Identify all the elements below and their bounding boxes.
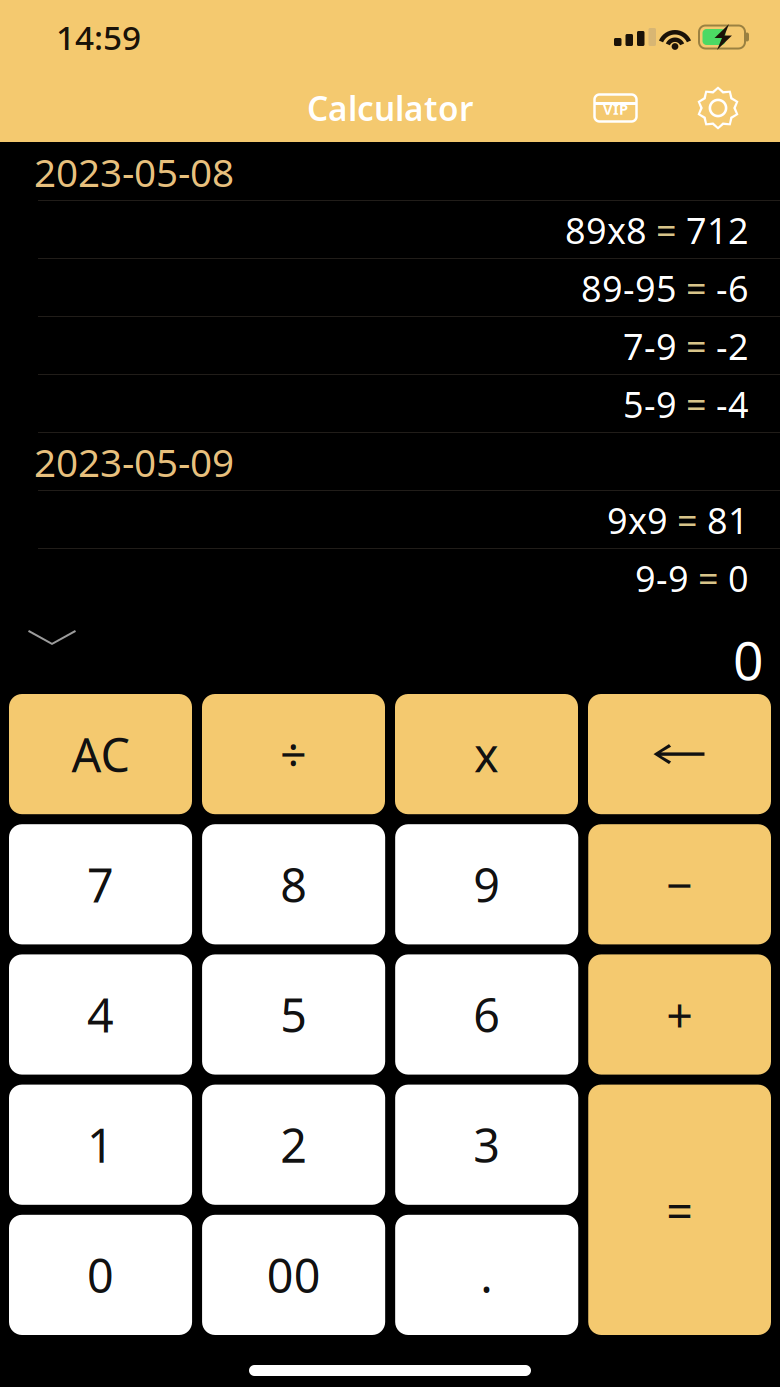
staticText: 4 bbox=[87, 983, 114, 1045]
staticText: 14:59 bbox=[56, 15, 141, 59]
staticText: -2 bbox=[716, 322, 749, 370]
button[interactable]: 3 bbox=[395, 1085, 578, 1205]
button[interactable]: VIP bbox=[555, 74, 676, 142]
staticText: 7-9 bbox=[623, 322, 677, 370]
button[interactable]: Settings bbox=[676, 74, 760, 142]
staticText: = bbox=[677, 264, 716, 312]
staticText: 9 bbox=[473, 853, 500, 915]
staticText: 0 bbox=[728, 554, 749, 602]
button[interactable]: = bbox=[588, 1085, 771, 1335]
button[interactable]: Backspace bbox=[588, 694, 771, 814]
staticText: -4 bbox=[716, 380, 749, 428]
button[interactable]: 7 bbox=[9, 824, 192, 944]
button[interactable]: x bbox=[395, 694, 578, 814]
staticText: 1 bbox=[87, 1114, 114, 1176]
staticText: VIP bbox=[603, 99, 628, 119]
button[interactable]: ÷ bbox=[202, 694, 385, 814]
staticText: Calculator bbox=[307, 86, 473, 130]
staticText: -6 bbox=[716, 264, 749, 312]
button[interactable]: 9-9 bbox=[0, 549, 780, 607]
button[interactable]: 4 bbox=[9, 954, 192, 1075]
button[interactable]: 89x8 bbox=[0, 201, 780, 259]
button[interactable]: 9x9 bbox=[0, 491, 780, 549]
staticText: . bbox=[480, 1244, 493, 1306]
staticText: 9-9 bbox=[635, 554, 689, 602]
staticText: = bbox=[677, 322, 716, 370]
staticText: 5 bbox=[280, 983, 307, 1045]
button[interactable]: 2 bbox=[202, 1085, 385, 1205]
staticText: 0 bbox=[733, 624, 764, 695]
staticText: 7 bbox=[87, 853, 114, 915]
button[interactable]: 6 bbox=[395, 954, 578, 1075]
staticText: = bbox=[677, 380, 716, 428]
staticText: − bbox=[666, 853, 693, 915]
button[interactable]: 5 bbox=[202, 954, 385, 1075]
button[interactable]: 9 bbox=[395, 824, 578, 944]
button[interactable]: + bbox=[588, 954, 771, 1075]
button[interactable]: AC bbox=[9, 694, 192, 814]
staticText: 2 bbox=[280, 1114, 307, 1176]
staticText: 712 bbox=[686, 206, 749, 254]
staticText: + bbox=[666, 983, 693, 1045]
staticText: = bbox=[689, 554, 728, 602]
staticText: 8 bbox=[280, 853, 307, 915]
staticText: 2023-05-09 bbox=[34, 436, 234, 488]
staticText: 81 bbox=[707, 496, 749, 544]
button[interactable]: 8 bbox=[202, 824, 385, 944]
button[interactable]: . bbox=[395, 1215, 578, 1335]
button[interactable]: Collapse history bbox=[0, 607, 100, 657]
button[interactable]: 5-9 bbox=[0, 375, 780, 433]
staticText: 89-95 bbox=[581, 264, 677, 312]
staticText: 0 bbox=[87, 1244, 114, 1306]
button[interactable]: 1 bbox=[9, 1085, 192, 1205]
staticText: = bbox=[647, 206, 686, 254]
staticText: 89x8 bbox=[565, 206, 647, 254]
staticText: = bbox=[668, 496, 707, 544]
staticText: 5-9 bbox=[623, 380, 677, 428]
staticText: 3 bbox=[473, 1114, 500, 1176]
staticText: x bbox=[474, 723, 499, 785]
button[interactable]: 0 bbox=[9, 1215, 192, 1335]
staticText: 9x9 bbox=[607, 496, 668, 544]
staticText: 2023-05-08 bbox=[34, 146, 234, 198]
staticText: = bbox=[666, 1179, 693, 1241]
button[interactable]: 89-95 bbox=[0, 259, 780, 317]
button[interactable]: 00 bbox=[202, 1215, 385, 1335]
staticText: AC bbox=[71, 723, 129, 785]
staticText: 6 bbox=[473, 983, 500, 1045]
staticText: ÷ bbox=[280, 723, 307, 785]
staticText: 00 bbox=[267, 1244, 321, 1306]
button[interactable]: − bbox=[588, 824, 771, 944]
button[interactable]: 7-9 bbox=[0, 317, 780, 375]
